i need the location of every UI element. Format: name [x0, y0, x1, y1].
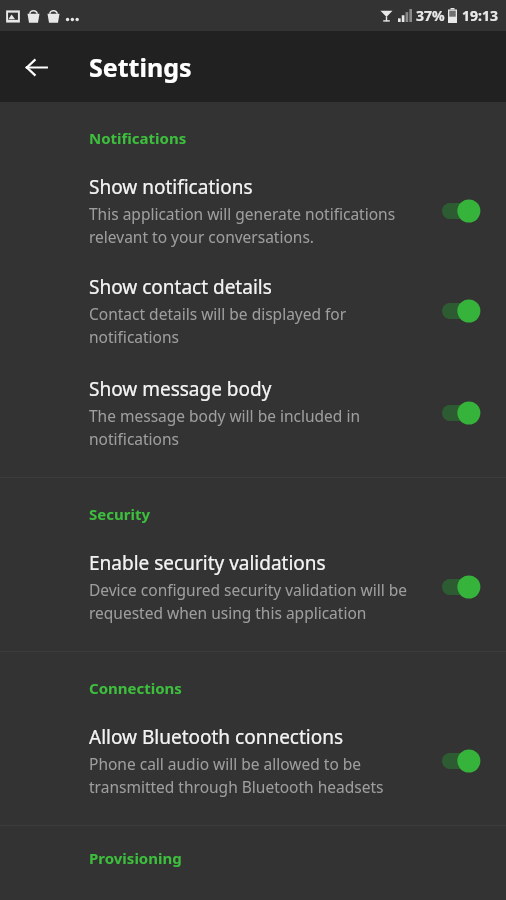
staticText: The message body will be included in not… — [89, 405, 428, 450]
staticText: This application will generate notificat… — [89, 203, 428, 248]
staticText: Settings — [89, 50, 192, 84]
staticText: Contact details will be displayed for no… — [89, 303, 428, 348]
button[interactable]: Toggle setting — [442, 194, 488, 228]
staticText: Phone call audio will be allowed to be t… — [89, 753, 428, 798]
staticText: Enable security validations — [89, 550, 326, 576]
staticText: Show message body — [89, 376, 272, 402]
button[interactable]: Allow Bluetooth connections — [0, 724, 506, 798]
staticText: Device configured security validation wi… — [89, 579, 428, 624]
staticText: Notifications — [89, 128, 187, 148]
staticText: 37% — [416, 6, 445, 25]
button[interactable]: Enable security validations — [0, 550, 506, 624]
staticText: Allow Bluetooth connections — [89, 724, 344, 750]
staticText: Security — [89, 504, 150, 524]
button[interactable]: Show contact details — [0, 274, 506, 348]
button[interactable]: Show notifications — [0, 174, 506, 248]
staticText: Show notifications — [89, 174, 253, 200]
staticText: Connections — [89, 678, 182, 698]
staticText: Show contact details — [89, 274, 272, 300]
staticText: Provisioning — [89, 848, 182, 868]
button[interactable]: Toggle setting — [442, 294, 488, 328]
button[interactable]: Back — [13, 44, 59, 90]
button[interactable]: Toggle setting — [442, 744, 488, 778]
button[interactable]: Toggle setting — [442, 570, 488, 604]
button[interactable]: Show message body — [0, 376, 506, 450]
staticText: 19:13 — [462, 6, 498, 25]
button[interactable]: Toggle setting — [442, 396, 488, 430]
